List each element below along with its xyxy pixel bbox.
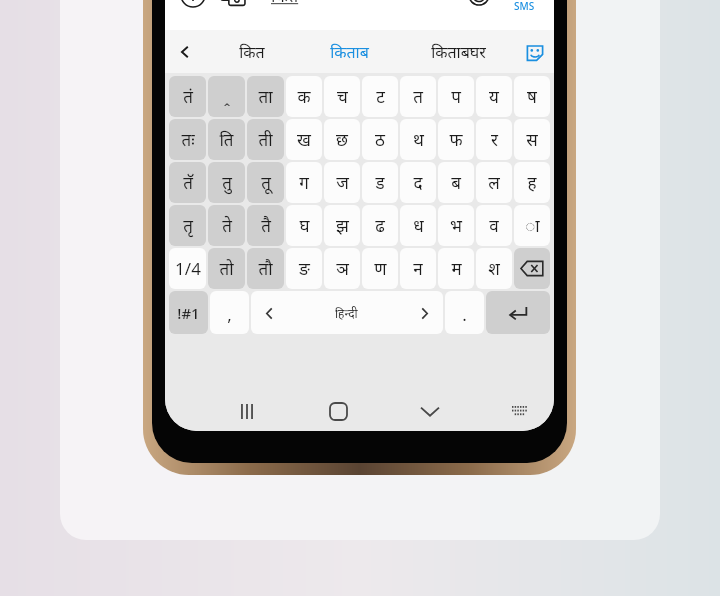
- staticText: त: [413, 85, 423, 108]
- staticText: ता: [258, 85, 273, 108]
- button[interactable]: Backspace: [514, 248, 550, 289]
- button[interactable]: ह: [514, 162, 550, 203]
- button[interactable]: ,: [210, 291, 249, 334]
- staticText: कित: [239, 41, 265, 63]
- button[interactable]: ति: [208, 119, 245, 160]
- staticText: क: [297, 85, 311, 108]
- button[interactable]: ध: [400, 205, 436, 246]
- staticText: थ: [413, 128, 424, 151]
- button[interactable]: म: [438, 248, 474, 289]
- button[interactable]: Home: [316, 391, 360, 431]
- button[interactable]: किताब: [298, 30, 400, 73]
- button[interactable]: Send SMS: [502, 0, 546, 22]
- staticText: न: [413, 257, 423, 280]
- staticText: प: [451, 85, 461, 108]
- staticText: द: [413, 171, 423, 194]
- button[interactable]: .: [445, 291, 484, 334]
- button[interactable]: ल: [476, 162, 512, 203]
- staticText: ह: [527, 171, 537, 194]
- button[interactable]: तौ: [247, 248, 284, 289]
- button[interactable]: व: [476, 205, 512, 246]
- button[interactable]: किताबघर: [400, 30, 516, 73]
- button[interactable]: Previous suggestions: [165, 30, 205, 73]
- staticText: ति: [219, 128, 234, 151]
- button[interactable]: तू: [247, 162, 284, 203]
- staticText: श: [488, 257, 500, 280]
- button[interactable]: ख: [286, 119, 322, 160]
- button[interactable]: ण: [362, 248, 398, 289]
- button[interactable]: त: [400, 76, 436, 117]
- staticText: भ: [450, 214, 462, 237]
- button[interactable]: तः: [169, 119, 206, 160]
- button[interactable]: प: [438, 76, 474, 117]
- staticText: ठ: [375, 128, 385, 151]
- button[interactable]: न: [400, 248, 436, 289]
- button[interactable]: Hide keyboard: [408, 391, 452, 431]
- button[interactable]: य: [476, 76, 512, 117]
- staticText: य: [489, 85, 499, 108]
- button[interactable]: ा: [514, 205, 550, 246]
- button[interactable]: ङ: [286, 248, 322, 289]
- button[interactable]: ट: [362, 76, 398, 117]
- button[interactable]: !#1: [169, 291, 208, 334]
- button[interactable]: स: [514, 119, 550, 160]
- button[interactable]: तु: [208, 162, 245, 203]
- staticText: ल: [488, 171, 500, 194]
- staticText: ,: [227, 303, 232, 326]
- button[interactable]: कित: [257, 0, 502, 20]
- button[interactable]: 1/4: [169, 248, 206, 289]
- button[interactable]: Switch keyboard: [500, 391, 540, 431]
- button[interactable]: घ: [286, 205, 322, 246]
- staticText: तै: [261, 214, 271, 237]
- button[interactable]: Stickers: [516, 30, 554, 73]
- button[interactable]: Gallery and camera: [213, 0, 253, 15]
- staticText: ञ: [336, 257, 349, 280]
- button[interactable]: तो: [208, 248, 245, 289]
- staticText: ढ: [375, 214, 385, 237]
- button[interactable]: Emoji: [462, 0, 496, 12]
- button[interactable]: फ: [438, 119, 474, 160]
- button[interactable]: छ: [324, 119, 360, 160]
- button[interactable]: ती: [247, 119, 284, 160]
- button[interactable]: तं: [169, 76, 206, 117]
- button[interactable]: Enter: [486, 291, 550, 334]
- button[interactable]: च: [324, 76, 360, 117]
- staticText: तं: [183, 85, 193, 108]
- button[interactable]: ता: [247, 76, 284, 117]
- button[interactable]: क: [286, 76, 322, 117]
- button[interactable]: र: [476, 119, 512, 160]
- button[interactable]: कित: [205, 30, 298, 73]
- staticText: ब: [451, 171, 461, 194]
- button[interactable]: ते: [208, 205, 245, 246]
- button[interactable]: ज: [324, 162, 360, 203]
- button[interactable]: ष: [514, 76, 550, 117]
- staticText: तु: [222, 171, 232, 194]
- staticText: ग: [299, 171, 309, 194]
- button[interactable]: भ: [438, 205, 474, 246]
- staticText: !#1: [177, 303, 200, 323]
- button[interactable]: द: [400, 162, 436, 203]
- staticText: तू: [261, 171, 271, 194]
- button[interactable]: ञ: [324, 248, 360, 289]
- staticText: ङ: [299, 257, 310, 280]
- button[interactable]: हिन्दी: [251, 291, 443, 334]
- button[interactable]: ग: [286, 162, 322, 203]
- staticText: किताब: [330, 41, 369, 63]
- button[interactable]: ढ: [362, 205, 398, 246]
- button[interactable]: Add attachment: [173, 0, 213, 15]
- staticText: तो: [219, 257, 234, 280]
- staticText: ध: [413, 214, 424, 237]
- button[interactable]: तै: [247, 205, 284, 246]
- button[interactable]: झ: [324, 205, 360, 246]
- staticText: ष: [527, 85, 537, 108]
- button[interactable]: Recent apps: [225, 391, 269, 431]
- button[interactable]: तृ: [169, 205, 206, 246]
- button[interactable]: ड: [362, 162, 398, 203]
- staticText: छ: [336, 128, 348, 151]
- button[interactable]: ठ: [362, 119, 398, 160]
- button[interactable]: ꞈ: [208, 76, 245, 117]
- button[interactable]: ब: [438, 162, 474, 203]
- button[interactable]: थ: [400, 119, 436, 160]
- button[interactable]: तॅ: [169, 162, 206, 203]
- button[interactable]: श: [476, 248, 512, 289]
